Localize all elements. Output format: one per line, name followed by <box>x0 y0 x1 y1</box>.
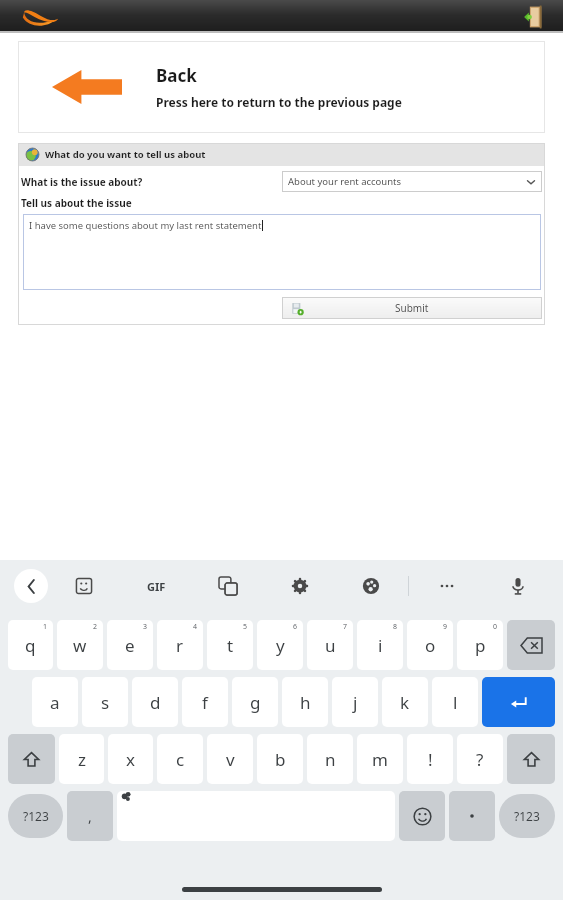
staticText: m <box>372 748 388 771</box>
button[interactable]: v <box>207 734 253 784</box>
staticText: a <box>50 691 60 714</box>
staticText: I have some questions about my last rent… <box>29 219 262 232</box>
staticText: n <box>325 748 336 771</box>
button[interactable]: d <box>132 677 178 727</box>
button[interactable]: I have some questions about my last rent… <box>23 214 541 290</box>
button[interactable]: l <box>432 677 478 727</box>
staticText: g <box>250 691 261 714</box>
button[interactable]: 5 <box>207 620 253 670</box>
staticText: Submit <box>395 301 429 315</box>
button[interactable]: 8 <box>357 620 403 670</box>
button[interactable]: 0 <box>457 620 503 670</box>
button[interactable]: j <box>332 677 378 727</box>
staticText: j <box>353 691 358 714</box>
staticText: 5 <box>243 622 248 632</box>
staticText: y <box>276 634 285 657</box>
staticText: 0 <box>493 622 498 632</box>
button[interactable]: 1 <box>8 620 53 670</box>
button[interactable]: Submit <box>282 297 542 319</box>
button[interactable]: 9 <box>407 620 453 670</box>
button[interactable]: GIF <box>120 560 192 612</box>
button[interactable]: Emoji <box>399 791 445 841</box>
button[interactable]: 6 <box>257 620 303 670</box>
button[interactable]: Comma <box>67 791 113 841</box>
button[interactable]: Voice input <box>482 560 553 612</box>
staticText: 8 <box>393 622 398 632</box>
staticText: Back <box>156 64 197 87</box>
button[interactable]: Stickers <box>48 560 120 612</box>
button[interactable]: b <box>257 734 303 784</box>
staticText: q <box>25 634 36 657</box>
staticText: b <box>275 748 286 771</box>
staticText: Tell us about the issue <box>21 196 132 210</box>
staticText: ?123 <box>514 808 540 824</box>
staticText: x <box>126 748 135 771</box>
staticText: v <box>226 748 235 771</box>
staticText: 3 <box>143 622 148 632</box>
button[interactable]: 7 <box>307 620 353 670</box>
button[interactable]: Space <box>117 791 395 841</box>
staticText: s <box>101 691 110 714</box>
staticText: e <box>125 634 135 657</box>
button[interactable]: a <box>32 677 78 727</box>
button[interactable]: s <box>82 677 128 727</box>
staticText: p <box>475 634 486 657</box>
button[interactable]: ?123 <box>499 794 555 838</box>
button[interactable]: Translate <box>192 560 264 612</box>
button[interactable]: 3 <box>107 620 153 670</box>
button[interactable]: c <box>157 734 203 784</box>
button[interactable]: Period <box>449 791 495 841</box>
button[interactable]: Back <box>18 41 545 133</box>
staticText: w <box>73 634 87 657</box>
button[interactable]: ! <box>407 734 453 784</box>
staticText: l <box>453 691 458 714</box>
button[interactable]: About your rent accounts <box>282 171 542 192</box>
button[interactable]: Settings <box>264 560 335 612</box>
staticText: What is the issue about? <box>21 175 143 189</box>
staticText: c <box>176 748 185 771</box>
button[interactable]: ? <box>457 734 503 784</box>
button[interactable]: Log out <box>521 4 547 30</box>
staticText: Press here to return to the previous pag… <box>156 94 402 110</box>
staticText: ?123 <box>23 808 49 824</box>
staticText: o <box>425 634 436 657</box>
button[interactable]: x <box>108 734 153 784</box>
staticText: , <box>88 807 92 826</box>
button[interactable]: f <box>182 677 228 727</box>
staticText: i <box>378 634 383 657</box>
staticText: 7 <box>343 622 348 632</box>
button[interactable]: 4 <box>157 620 203 670</box>
staticText: ! <box>428 748 433 771</box>
staticText: About your rent accounts <box>288 175 402 188</box>
button[interactable]: h <box>282 677 328 727</box>
button[interactable]: m <box>357 734 403 784</box>
button[interactable]: Themes <box>335 560 406 612</box>
staticText: f <box>202 691 208 714</box>
button[interactable]: z <box>59 734 104 784</box>
staticText: h <box>300 691 311 714</box>
staticText: 4 <box>193 622 198 632</box>
button[interactable]: g <box>232 677 278 727</box>
button[interactable]: n <box>307 734 353 784</box>
staticText: 9 <box>443 622 448 632</box>
button[interactable]: Shift <box>8 734 55 784</box>
staticText: 2 <box>93 622 98 632</box>
button[interactable]: Enter <box>482 677 555 727</box>
button[interactable]: 2 <box>57 620 103 670</box>
staticText: d <box>150 691 161 714</box>
staticText: What do you want to tell us about <box>45 148 206 161</box>
staticText: k <box>400 691 410 714</box>
staticText: GIF <box>147 579 166 594</box>
staticText: r <box>176 634 184 657</box>
button[interactable]: Back <box>14 569 48 603</box>
staticText: t <box>227 634 234 657</box>
staticText: u <box>325 634 336 657</box>
button[interactable]: Shift <box>507 734 555 784</box>
button[interactable]: ?123 <box>8 794 63 838</box>
button[interactable]: Backspace <box>507 620 555 670</box>
staticText: ? <box>476 748 484 771</box>
staticText: 1 <box>43 622 48 632</box>
staticText: 6 <box>293 622 298 632</box>
button[interactable]: k <box>382 677 428 727</box>
button[interactable]: More options <box>411 560 482 612</box>
